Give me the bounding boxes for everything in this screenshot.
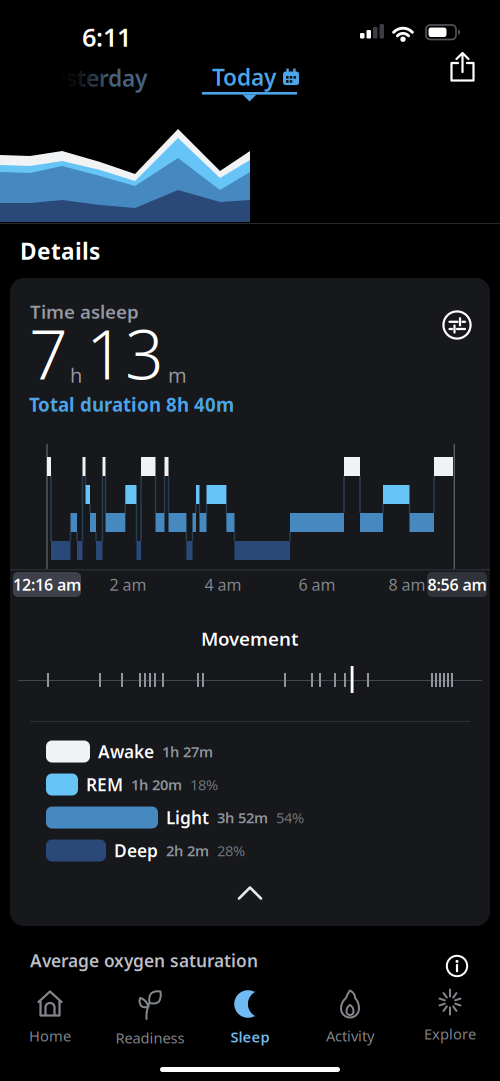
staticText: Awake xyxy=(98,740,154,763)
button[interactable]: Adjust sleep time xyxy=(442,310,472,340)
button[interactable]: Today xyxy=(212,62,299,92)
staticText: 2h 2m xyxy=(166,841,209,860)
staticText: Readiness xyxy=(115,1028,184,1047)
staticText: 8 am xyxy=(388,574,425,595)
staticText: 28% xyxy=(217,841,245,860)
button[interactable]: Activity xyxy=(300,989,400,1045)
button[interactable]: Collapse details xyxy=(235,883,265,903)
staticText: m xyxy=(168,362,187,388)
staticText: 4 am xyxy=(204,574,241,595)
staticText: REM xyxy=(86,773,123,796)
staticText: Home xyxy=(29,1026,71,1045)
staticText: 6:11 xyxy=(82,20,131,54)
staticText: 12:16 am xyxy=(13,574,81,595)
staticText: Total duration 8h 40m xyxy=(29,392,234,417)
staticText: Movement xyxy=(201,626,299,651)
staticText: Time asleep xyxy=(30,299,139,324)
staticText: Average oxygen saturation xyxy=(30,949,258,972)
staticText: 13 xyxy=(86,308,164,398)
staticText: h xyxy=(70,362,82,388)
staticText: 6 am xyxy=(298,574,335,595)
staticText: Sleep xyxy=(230,1027,269,1046)
button[interactable]: About average oxygen saturation xyxy=(446,955,468,977)
button[interactable]: Share xyxy=(447,50,478,84)
staticText: Explore xyxy=(424,1024,476,1043)
staticText: Deep xyxy=(114,839,158,862)
staticText: 18% xyxy=(190,775,218,794)
staticText: 1h 20m xyxy=(131,775,182,794)
button[interactable]: Home xyxy=(0,989,100,1045)
staticText: Details xyxy=(20,236,100,266)
staticText: 7 xyxy=(29,308,68,398)
button[interactable]: Explore xyxy=(400,989,500,1043)
staticText: 2 am xyxy=(109,574,146,595)
staticText: Today xyxy=(212,62,276,92)
staticText: Yesterday xyxy=(40,63,147,93)
staticText: 8:56 am xyxy=(427,574,486,595)
button[interactable]: Yesterday xyxy=(40,63,147,93)
staticText: 1h 27m xyxy=(162,742,213,761)
staticText: Activity xyxy=(326,1026,374,1045)
button[interactable]: Sleep xyxy=(200,989,300,1046)
staticText: 3h 52m xyxy=(217,808,268,827)
staticText: 54% xyxy=(276,808,304,827)
staticText: Light xyxy=(166,806,209,829)
button[interactable]: Readiness xyxy=(100,989,200,1047)
